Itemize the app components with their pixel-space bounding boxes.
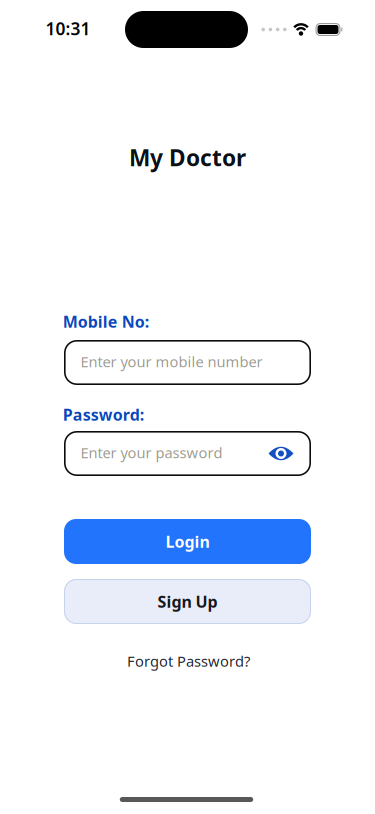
staticText: Sign Up [157,591,217,612]
staticText: Mobile No: [63,311,149,332]
textField[interactable]: Enter your password [80,443,268,462]
staticText: Login [165,531,209,552]
button[interactable]: Sign Up [64,579,311,624]
staticText: Forgot Password? [127,651,250,671]
textField[interactable]: Enter your mobile number [80,352,293,371]
staticText: 10:31 [45,17,90,40]
staticText: Enter your password [80,443,222,462]
staticText: My Doctor [129,142,246,172]
staticText: Password: [63,404,144,425]
button[interactable]: Forgot Password? [127,651,250,671]
button[interactable]: Login [64,519,311,564]
button[interactable]: Show password [268,445,293,461]
staticText: Enter your mobile number [80,352,262,371]
